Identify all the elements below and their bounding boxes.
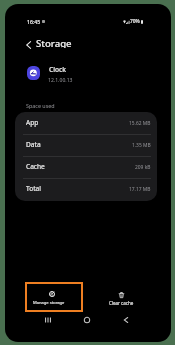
staticText: Total [26,184,41,193]
button[interactable]: Cache [15,156,157,178]
staticText: Clock [49,65,66,74]
staticText: 16:45 [27,18,41,25]
button[interactable]: Recents [37,310,59,330]
staticText: Space used [26,102,55,109]
staticText: Manage storage [33,300,65,306]
staticText: Cache [26,162,45,171]
button[interactable]: Data [15,134,157,156]
button[interactable]: App [15,112,157,134]
button[interactable]: Back [115,310,137,330]
staticText: Storage [36,37,72,48]
staticText: Clear cache [109,300,134,306]
staticText: App [26,118,39,127]
button[interactable]: Manage storage [25,282,83,312]
staticText: 12.1.00.13 [48,77,73,84]
staticText: 70% [130,18,140,25]
button[interactable]: Clear cache [92,282,150,312]
staticText: 17.17 MB [129,186,151,193]
staticText: 209 kB [135,164,151,171]
button[interactable]: Total [15,178,157,200]
staticText: 15.62 MB [129,120,151,127]
staticText: 1.35 MB [132,142,151,149]
button[interactable]: Home [76,310,98,330]
staticText: Data [26,140,41,149]
button[interactable]: Back [20,36,36,54]
